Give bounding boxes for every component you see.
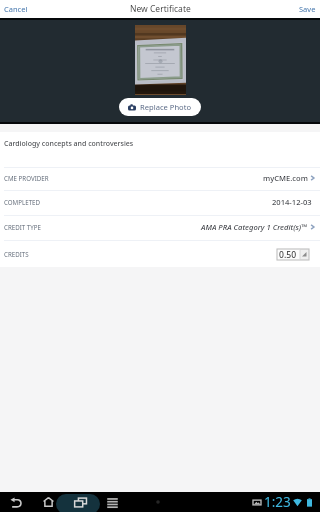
button[interactable]: Save (0, 0, 320, 18)
staticText: myCME.com (263, 173, 308, 183)
button[interactable]: Recent apps (65, 492, 95, 512)
button[interactable]: COMPLETED (0, 191, 320, 215)
button[interactable]: Cardiology concepts and controversies (0, 132, 320, 167)
button[interactable]: CREDIT TYPE (0, 216, 320, 240)
staticText: CREDIT TYPE (4, 223, 41, 231)
button[interactable]: Cancel (0, 0, 320, 18)
staticText: CREDITS (4, 250, 29, 258)
staticText: Cancel (4, 4, 28, 14)
button[interactable]: Back (0, 492, 32, 512)
staticText: 1:23 (264, 493, 291, 511)
staticText: COMPLETED (4, 198, 41, 206)
staticText: Save (299, 4, 316, 14)
button[interactable]: Home (32, 492, 65, 512)
staticText: 0.50 (279, 249, 297, 259)
button[interactable]: CME PROVIDER (0, 168, 320, 190)
button[interactable]: Menu (95, 492, 130, 512)
staticText: Replace Photo (140, 102, 192, 112)
staticText: New Certificate (130, 3, 191, 15)
staticText: Cardiology concepts and controversies (4, 139, 134, 149)
button[interactable]: Credits 0.50 (277, 249, 309, 260)
staticText: AMA PRA Category 1 Credit(s)™ (201, 222, 308, 232)
staticText: 2014-12-03 (272, 197, 312, 207)
button[interactable]: Replace Photo (119, 98, 201, 116)
staticText: CME PROVIDER (4, 174, 49, 182)
